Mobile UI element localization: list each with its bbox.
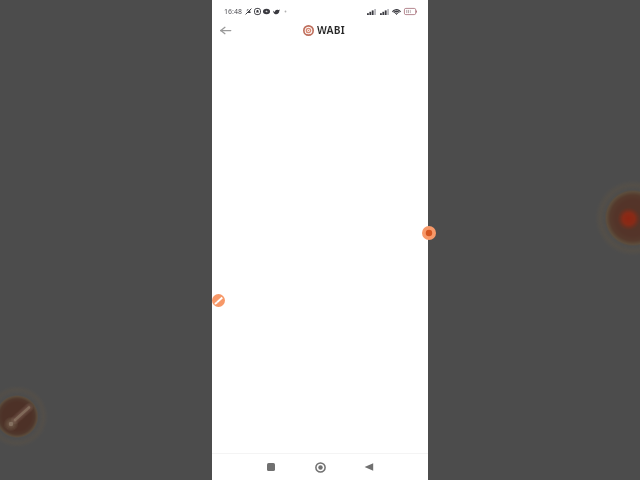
button[interactable]: Home (310, 457, 330, 477)
button[interactable]: Target (422, 226, 436, 240)
staticText: 16:48 (224, 7, 242, 17)
button[interactable]: Compose (212, 294, 225, 307)
button[interactable]: Recent apps (261, 457, 281, 477)
staticText: WABI (317, 23, 345, 37)
button[interactable]: Back (359, 457, 379, 477)
button[interactable]: Back (217, 23, 233, 38)
